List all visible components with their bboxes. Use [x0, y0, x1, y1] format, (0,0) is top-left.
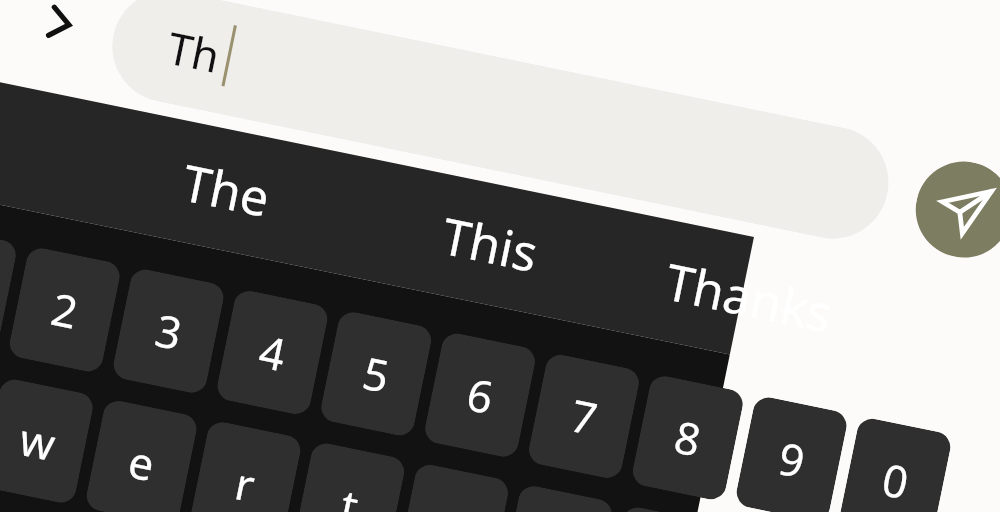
button[interactable]: e	[84, 398, 199, 512]
staticText: 0	[877, 448, 915, 512]
staticText: 3	[150, 299, 188, 363]
button[interactable]: Next	[25, 0, 96, 59]
button[interactable]: 9	[734, 395, 849, 512]
staticText: Th	[162, 17, 225, 86]
button[interactable]: Thanks	[637, 235, 860, 359]
button[interactable]: This	[379, 182, 601, 306]
staticText: 6	[462, 363, 499, 427]
button[interactable]: 6	[422, 331, 538, 459]
button[interactable]: 5	[318, 309, 434, 438]
button[interactable]: 4	[215, 288, 330, 417]
staticText: 4	[254, 321, 292, 385]
button[interactable]: i	[603, 505, 719, 512]
staticText: 7	[566, 384, 603, 448]
button[interactable]: 8	[630, 373, 745, 502]
staticText: t	[336, 474, 364, 512]
staticText: 8	[669, 406, 707, 470]
button[interactable]: Send	[907, 153, 1000, 266]
button[interactable]: w	[0, 377, 96, 505]
button[interactable]: 2	[7, 245, 122, 374]
staticText: e	[123, 430, 160, 494]
staticText: 9	[773, 427, 811, 491]
staticText: 5	[358, 342, 395, 406]
staticText: This	[436, 201, 544, 287]
staticText: r	[230, 452, 261, 512]
staticText: Thanks	[660, 247, 839, 347]
staticText: The	[177, 148, 276, 232]
staticText: 2	[46, 278, 84, 342]
button[interactable]: Th	[102, 0, 899, 249]
button[interactable]: 1	[0, 224, 19, 353]
button[interactable]: y	[395, 462, 511, 512]
staticText: w	[15, 408, 61, 474]
button[interactable]: r	[188, 419, 303, 512]
button[interactable]: 3	[111, 267, 226, 396]
button[interactable]: 7	[526, 352, 642, 481]
button[interactable]: u	[499, 483, 615, 512]
button[interactable]: The	[114, 127, 337, 252]
button[interactable]: 0	[838, 416, 953, 512]
button[interactable]: t	[291, 441, 407, 512]
